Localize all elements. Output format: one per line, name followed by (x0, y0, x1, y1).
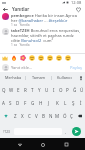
button[interactable]: V (33, 109, 40, 122)
button[interactable]: Ğ (71, 83, 78, 96)
button[interactable]: Recents (62, 140, 71, 149)
button[interactable]: S (7, 96, 14, 109)
button[interactable]: Emoji reaction (38, 55, 44, 61)
button[interactable]: K (53, 96, 61, 109)
staticText: Tamam (32, 75, 46, 80)
staticText: P (66, 87, 69, 93)
button[interactable]: R (22, 83, 29, 96)
staticText: Kullanıcı (57, 75, 72, 80)
staticText: O (59, 87, 63, 93)
staticText: İ (80, 100, 82, 106)
staticText: E (17, 87, 20, 93)
button[interactable]: Merhaba (1, 72, 25, 83)
button[interactable]: Q (0, 83, 8, 96)
button[interactable]: Emoji reaction (20, 55, 26, 61)
button[interactable]: tabeTZEH Bonuhsol eros nequesitas, hazır… (2, 28, 83, 47)
button[interactable]: Paylaş (69, 64, 83, 71)
staticText: Ş (72, 100, 75, 106)
button[interactable]: Z (11, 109, 19, 122)
button[interactable]: Tamam (26, 72, 51, 83)
button[interactable]: D (14, 96, 21, 109)
staticText: Merhaba (5, 75, 22, 80)
staticText: J (48, 100, 50, 106)
staticText: Ü (80, 87, 84, 93)
staticText: B (42, 113, 45, 119)
staticText: Yanıtlar (12, 6, 30, 12)
button[interactable]: W (8, 83, 15, 96)
staticText: Ö (63, 113, 67, 119)
button[interactable]: G (29, 96, 37, 109)
button[interactable]: H (37, 96, 45, 109)
button[interactable]: Emoji reaction (11, 55, 17, 61)
staticText: C (28, 113, 31, 119)
button[interactable]: E (15, 83, 22, 96)
button[interactable]: Send (68, 125, 85, 138)
button[interactable]: F (21, 96, 29, 109)
button[interactable]: C (26, 109, 33, 122)
staticText: Y (38, 87, 41, 93)
staticText: S (9, 100, 12, 106)
button[interactable]: U (43, 83, 50, 96)
button[interactable]: O (57, 83, 64, 96)
staticText: pembegece Harika bir insan Ayrıca her @k… (11, 13, 83, 23)
button[interactable]: P (64, 83, 71, 96)
staticText: R (24, 87, 27, 93)
button[interactable]: X (19, 109, 26, 122)
button[interactable]: Kullanıcı (52, 72, 77, 83)
staticText: Z (14, 113, 17, 119)
staticText: L (64, 100, 67, 106)
button[interactable]: Ç (68, 109, 75, 122)
staticText: A (2, 100, 5, 106)
staticText: W (9, 87, 14, 93)
button[interactable]: Y (36, 83, 43, 96)
button[interactable]: Back (15, 140, 24, 149)
button[interactable]: Emoji reaction (29, 55, 35, 61)
staticText: V (35, 113, 38, 119)
button[interactable]: N (47, 109, 54, 122)
button[interactable]: M (54, 109, 61, 122)
button[interactable]: Emoji reaction (47, 55, 53, 61)
staticText: T (31, 87, 34, 93)
staticText: I (53, 87, 55, 93)
staticText: D (16, 100, 20, 106)
button[interactable]: Period (63, 125, 68, 138)
button[interactable]: B (40, 109, 47, 122)
staticText: 12:08 (71, 0, 82, 5)
button[interactable]: Shift (0, 109, 11, 122)
staticText: Ğ (73, 87, 77, 93)
button[interactable]: Voice input (77, 72, 84, 83)
staticText: 1 sa Yanıtla (11, 43, 30, 47)
staticText: Paylaş (70, 65, 82, 70)
staticText: ?123 (3, 130, 10, 134)
button[interactable]: Emoji reaction (65, 55, 71, 61)
button[interactable]: J (45, 96, 53, 109)
staticText: F (24, 100, 27, 106)
button[interactable]: A (0, 96, 7, 109)
staticText: H (39, 100, 43, 106)
button[interactable]: İ (77, 96, 85, 109)
button[interactable]: T (29, 83, 36, 96)
button[interactable]: L (61, 96, 69, 109)
button[interactable]: I (50, 83, 57, 96)
button[interactable]: Home (38, 140, 47, 149)
button[interactable]: Like (75, 6, 82, 13)
staticText: 1 sa Yanıtla (11, 23, 30, 27)
button[interactable]: ?123 (0, 125, 13, 138)
staticText: Yanıt ekle... (11, 65, 33, 70)
staticText: Q (2, 87, 6, 93)
staticText: U (45, 87, 49, 93)
staticText: M (55, 113, 60, 119)
staticText: X (21, 113, 24, 119)
button[interactable]: Ü (78, 83, 85, 96)
button[interactable]: Back (2, 6, 9, 13)
button[interactable]: Ş (69, 96, 77, 109)
button[interactable]: Ö (61, 109, 68, 122)
staticText: K (56, 100, 59, 106)
button[interactable]: Emoji reaction (56, 55, 62, 61)
button[interactable]: pembegece Harika bir insan Ayrıca her @k… (2, 13, 83, 27)
button[interactable]: Backspace (75, 109, 85, 122)
button[interactable]: Emoji reaction (2, 55, 8, 61)
staticText: N (49, 113, 53, 119)
staticText: . (65, 129, 67, 135)
